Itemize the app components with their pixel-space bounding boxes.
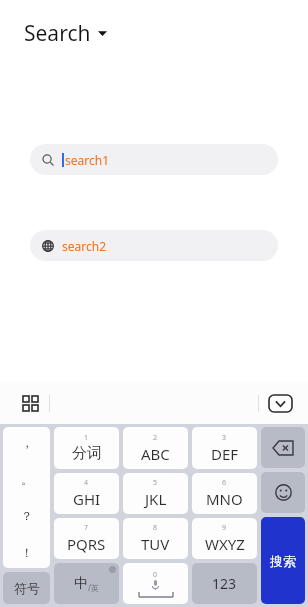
button[interactable]: Hide keyboard	[265, 388, 295, 418]
button[interactable]: Keyboard menu	[16, 389, 44, 417]
staticText: ？	[21, 508, 33, 523]
button[interactable]: search2	[30, 230, 278, 261]
staticText: GHI	[73, 489, 101, 509]
staticText: 0	[153, 570, 158, 580]
staticText: 3	[222, 433, 227, 443]
button[interactable]: Space	[123, 563, 188, 604]
staticText: search1	[65, 152, 110, 168]
button[interactable]: Search	[24, 19, 107, 48]
staticText: ABC	[141, 444, 170, 464]
staticText: PQRS	[67, 534, 106, 554]
staticText: TUV	[141, 534, 170, 554]
staticText: ，	[21, 435, 33, 450]
button[interactable]: 3 DEF	[192, 427, 257, 469]
staticText: Search	[24, 19, 91, 48]
button[interactable]: 1 分词	[54, 427, 119, 469]
staticText: ！	[21, 545, 33, 560]
staticText: search2	[62, 238, 107, 254]
button[interactable]: Chinese English toggle	[54, 563, 119, 604]
staticText: MNO	[206, 489, 243, 509]
staticText: JKL	[145, 489, 167, 509]
button[interactable]: 6 MNO	[192, 473, 257, 514]
staticText: 中	[74, 575, 88, 593]
button[interactable]: Symbols	[3, 572, 50, 604]
staticText: 123	[212, 574, 237, 593]
button[interactable]: 5 JKL	[123, 473, 188, 514]
button[interactable]: Punctuation	[3, 427, 50, 568]
staticText: 4	[84, 478, 89, 488]
button[interactable]: Search	[261, 517, 305, 604]
button[interactable]: Backspace	[261, 427, 305, 468]
staticText: 2	[153, 433, 158, 443]
staticText: 9	[222, 523, 227, 533]
button[interactable]: search1	[30, 144, 278, 175]
staticText: 8	[153, 523, 158, 533]
staticText: 1	[84, 433, 89, 443]
button[interactable]: 123 numbers	[192, 563, 257, 604]
button[interactable]: 4 GHI	[54, 473, 119, 514]
staticText: WXYZ	[205, 534, 245, 554]
staticText: /英	[88, 582, 99, 593]
button[interactable]: 2 ABC	[123, 427, 188, 469]
button[interactable]: 8 TUV	[123, 518, 188, 559]
staticText: 5	[153, 478, 158, 488]
staticText: 。	[21, 472, 33, 487]
staticText: 搜索	[270, 553, 296, 569]
button[interactable]: 9 WXYZ	[192, 518, 257, 559]
staticText: 6	[222, 478, 227, 488]
staticText: 符号	[14, 580, 40, 596]
button[interactable]: 7 PQRS	[54, 518, 119, 559]
staticText: DEF	[211, 444, 239, 464]
staticText: 7	[84, 523, 89, 533]
staticText: 分词	[72, 444, 102, 463]
button[interactable]: Emoji	[261, 472, 305, 513]
